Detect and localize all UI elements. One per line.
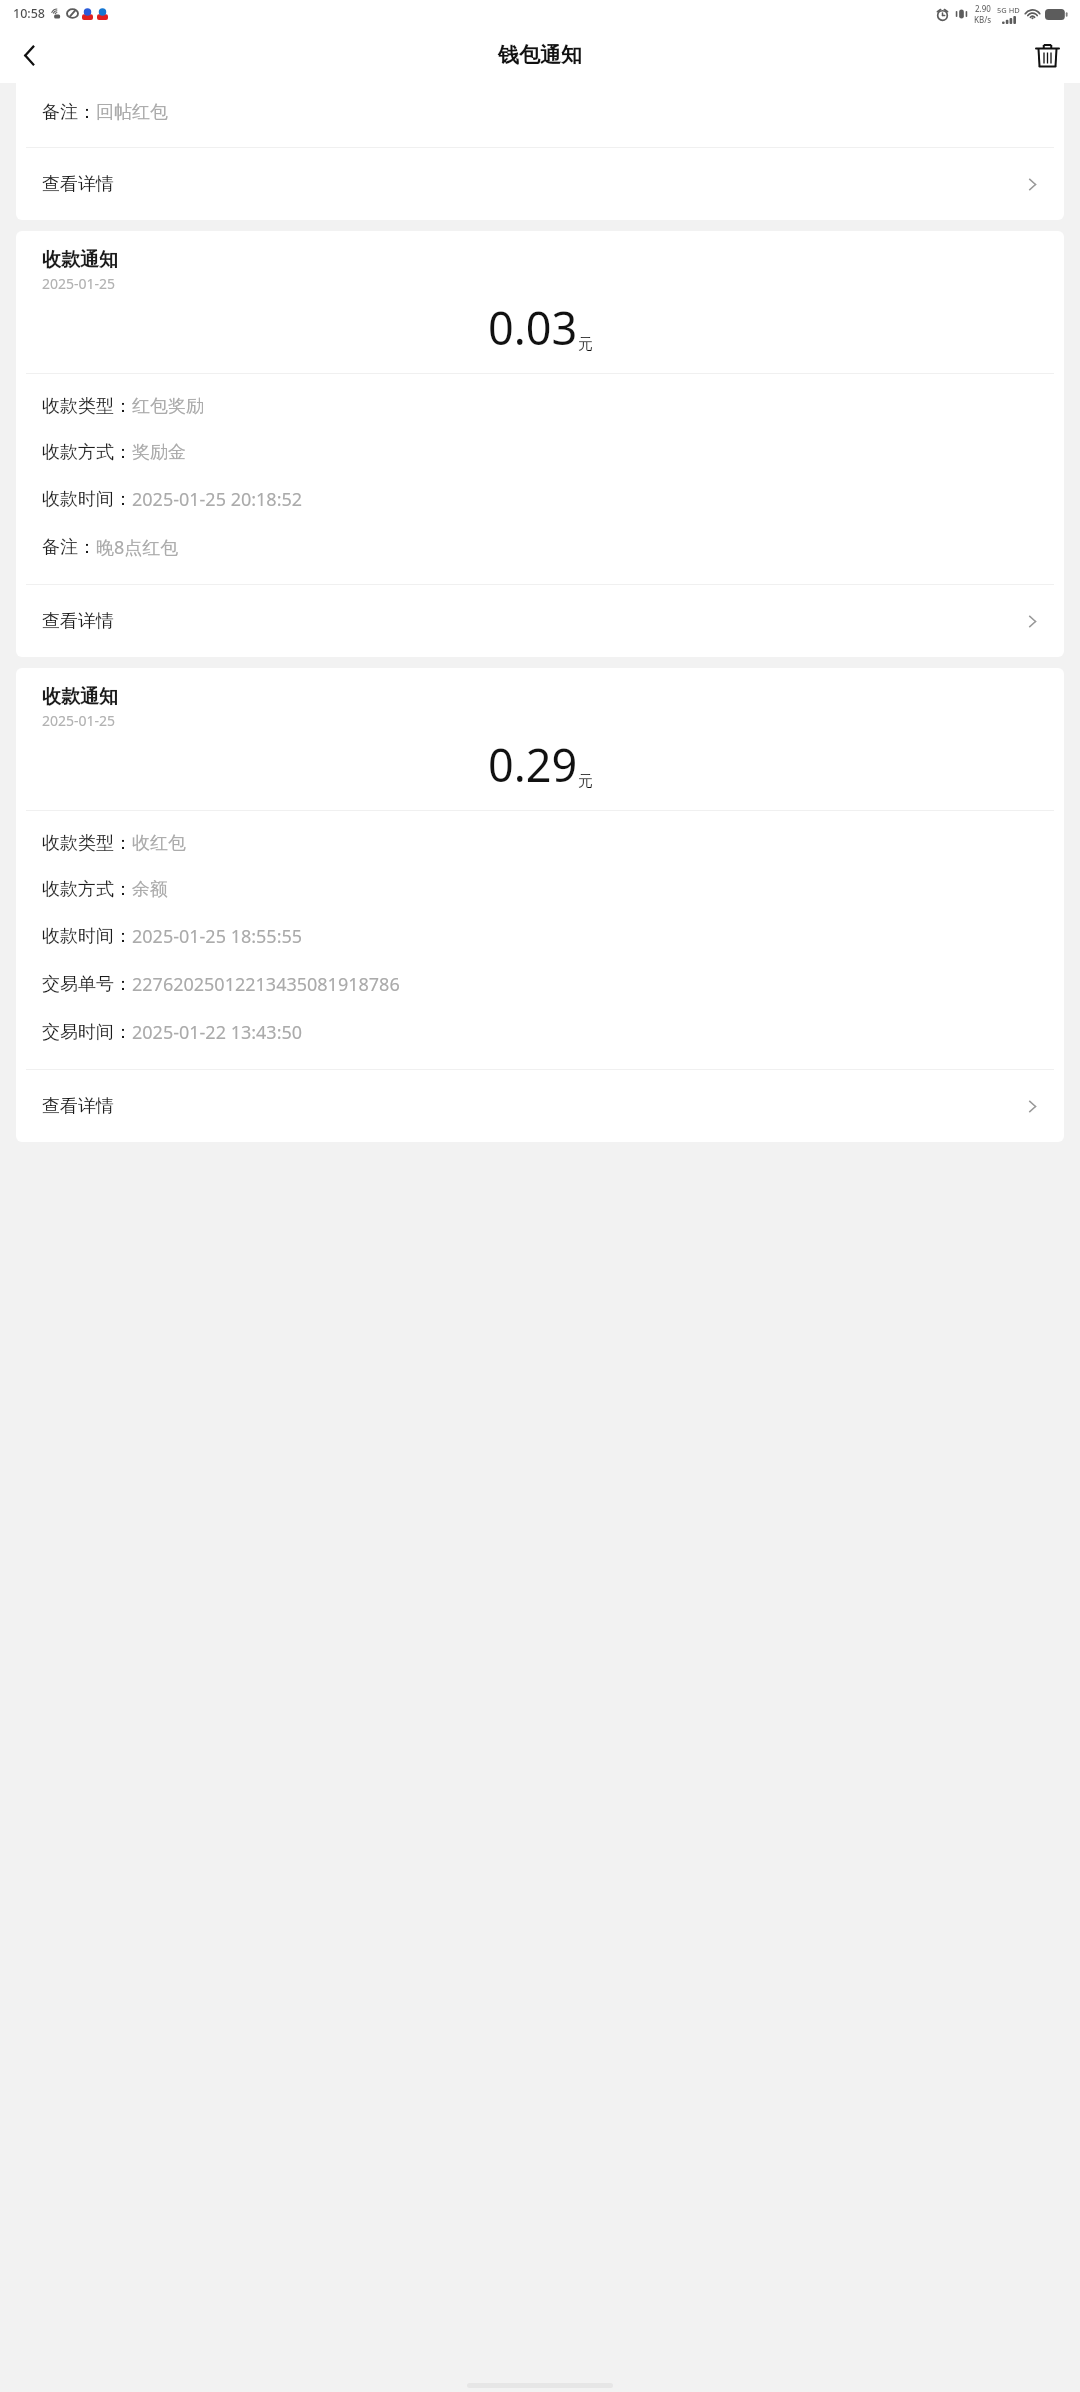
staticText: 元	[578, 335, 593, 354]
staticText: 查看详情	[42, 173, 114, 196]
staticText: 2025-01-25	[42, 711, 116, 730]
staticText: 钱包通知	[498, 42, 582, 68]
staticText: 2025-01-22 13:43:50	[132, 1020, 303, 1045]
staticText: 2025-01-25	[42, 274, 116, 293]
staticText: 元	[578, 772, 593, 791]
staticText: 收款时间：	[42, 925, 132, 948]
staticText: 22762025012213435081918786	[132, 972, 400, 997]
staticText: 晚8点红包	[96, 535, 179, 560]
staticText: 2025-01-25 20:18:52	[132, 487, 303, 512]
button[interactable]: Back	[4, 30, 54, 80]
staticText: 2.90	[975, 3, 991, 14]
staticText: 收款方式：	[42, 878, 132, 901]
staticText: 红包奖励	[132, 395, 204, 418]
staticText: 5G HD	[997, 5, 1020, 15]
button[interactable]: Delete	[1022, 30, 1072, 80]
staticText: 查看详情	[42, 610, 114, 633]
staticText: 余额	[132, 878, 168, 901]
staticText: 备注：	[42, 101, 96, 124]
staticText: 收款通知	[42, 685, 118, 709]
staticText: 备注：	[42, 536, 96, 559]
staticText: 收款方式：	[42, 441, 132, 464]
staticText: 奖励金	[132, 441, 186, 464]
staticText: 收款类型：	[42, 395, 132, 418]
button[interactable]: 查看详情	[16, 585, 1064, 657]
staticText: 收红包	[132, 832, 186, 855]
staticText: 10:58	[13, 5, 46, 22]
staticText: 收款通知	[42, 248, 118, 272]
button[interactable]: 查看详情	[16, 1070, 1064, 1142]
staticText: 收款时间：	[42, 488, 132, 511]
staticText: 2025-01-25 18:55:55	[132, 924, 303, 949]
staticText: 查看详情	[42, 1095, 114, 1118]
button[interactable]: 查看详情	[16, 148, 1064, 220]
staticText: 交易单号：	[42, 973, 132, 996]
staticText: KB/s	[974, 14, 992, 25]
staticText: 0.03	[488, 297, 578, 358]
staticText: 回帖红包	[96, 101, 168, 124]
staticText: 交易时间：	[42, 1021, 132, 1044]
staticText: 0.29	[488, 734, 578, 795]
staticText: 收款类型：	[42, 832, 132, 855]
